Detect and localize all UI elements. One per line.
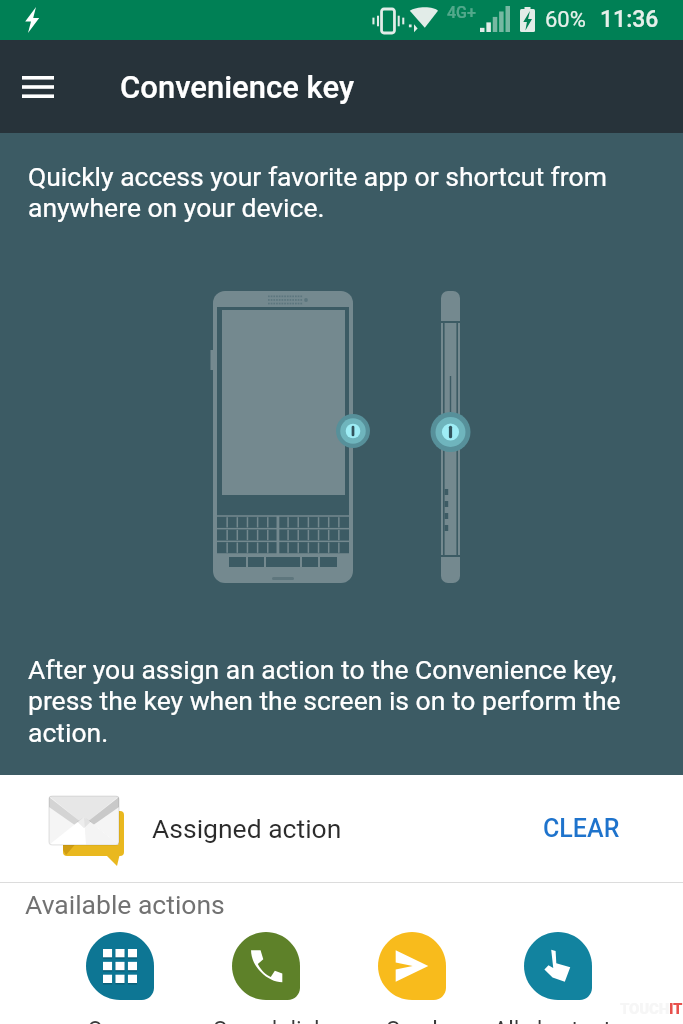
staticText: Send xyxy=(386,1017,438,1024)
staticText: CLEAR xyxy=(543,814,620,843)
button[interactable]: Opens xyxy=(47,932,193,1024)
staticText: Quickly access your favorite app or shor… xyxy=(28,161,623,224)
staticText: IT xyxy=(669,1000,683,1018)
staticText: Available actions xyxy=(25,889,225,920)
staticText: Speed dial xyxy=(213,1017,320,1024)
staticText: Convenience key xyxy=(120,69,354,105)
button[interactable]: Send xyxy=(339,932,485,1024)
staticText: 60% xyxy=(545,7,586,33)
button[interactable]: Open navigation menu xyxy=(0,40,76,133)
staticText: Opens xyxy=(87,1017,153,1024)
staticText: After you assign an action to the Conven… xyxy=(28,654,630,749)
staticText: TOUCH xyxy=(620,1000,669,1018)
button[interactable]: CLEAR xyxy=(527,800,639,857)
button[interactable]: All shortcuts xyxy=(485,932,631,1024)
button[interactable]: Speed dial xyxy=(193,932,339,1024)
staticText: 4G+ xyxy=(447,3,476,22)
staticText: All shortcuts xyxy=(493,1017,623,1024)
staticText: 11:36 xyxy=(600,6,659,33)
staticText: Assigned action xyxy=(152,813,342,844)
button[interactable]: Assigned action xyxy=(0,775,683,882)
